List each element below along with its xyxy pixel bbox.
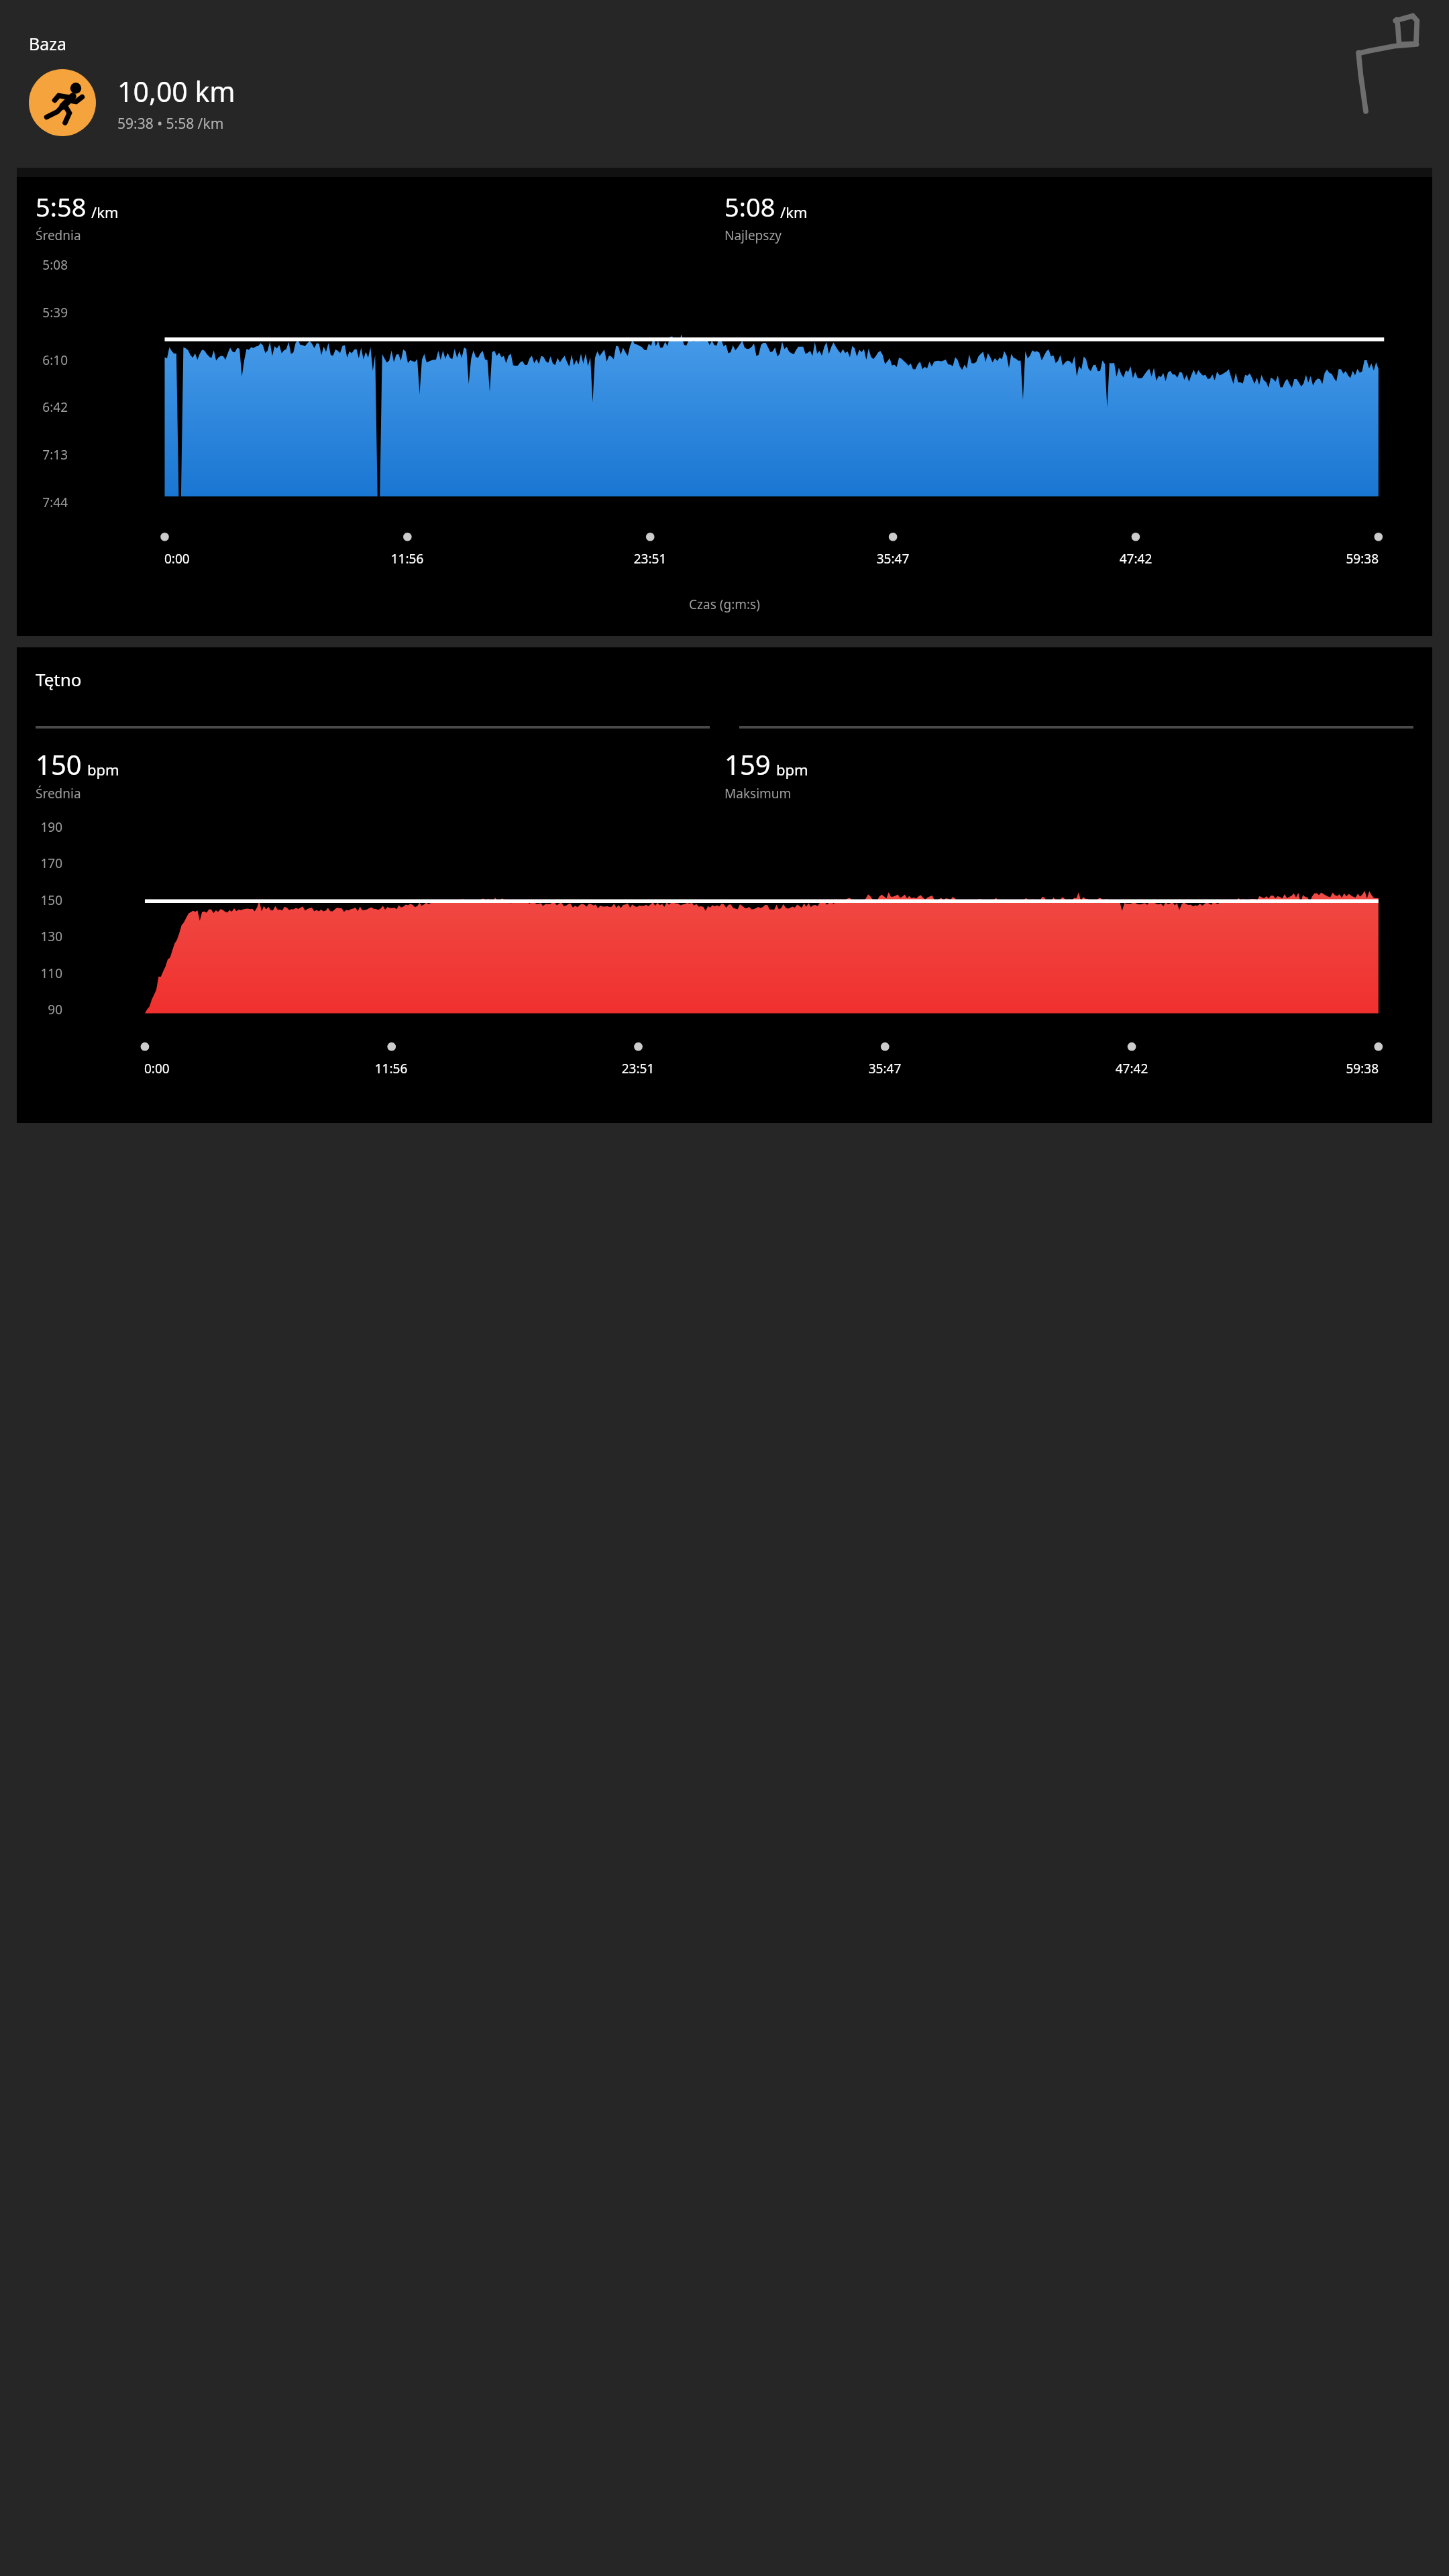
staticText: 159 <box>724 746 771 782</box>
staticText: 0:00 <box>164 550 286 568</box>
staticText: 130 <box>26 928 62 945</box>
staticText: 150 <box>26 892 62 909</box>
staticText: 59:38 • 5:58 /km <box>117 114 224 133</box>
staticText: 190 <box>26 818 62 836</box>
staticText: 110 <box>26 965 62 982</box>
staticText: Średnia <box>36 227 81 244</box>
staticText: 6:42 <box>26 398 68 416</box>
staticText: /km <box>780 202 808 222</box>
staticText: 59:38 <box>1257 550 1379 568</box>
staticText: /km <box>91 202 119 222</box>
staticText: Maksimum <box>724 785 792 802</box>
staticText: Tętno <box>36 667 82 691</box>
staticText: 6:10 <box>26 352 68 369</box>
staticText: bpm <box>87 759 119 780</box>
staticText: 47:42 <box>1008 1060 1255 1077</box>
staticText: 0:00 <box>144 1060 268 1077</box>
staticText: 11:56 <box>286 550 529 568</box>
button[interactable]: 5:58 <box>17 168 1432 636</box>
button[interactable]: Running activity <box>29 69 96 136</box>
staticText: 5:08 <box>724 189 775 224</box>
staticText: 5:08 <box>26 256 68 274</box>
staticText: 90 <box>26 1001 62 1018</box>
staticText: 5:39 <box>26 304 68 321</box>
staticText: 7:13 <box>26 446 68 464</box>
button[interactable]: Finish flag <box>1338 8 1432 129</box>
staticText: 23:51 <box>529 550 771 568</box>
staticText: 7:44 <box>26 494 68 511</box>
staticText: Baza <box>29 32 67 55</box>
staticText: 10,00 km <box>117 72 235 110</box>
staticText: Średnia <box>36 785 81 802</box>
staticText: 23:51 <box>515 1060 761 1077</box>
staticText: Czas (g:m:s) <box>17 596 1432 613</box>
staticText: 170 <box>26 855 62 872</box>
staticText: 35:47 <box>761 1060 1008 1077</box>
staticText: bpm <box>776 759 808 780</box>
staticText: 47:42 <box>1014 550 1257 568</box>
staticText: 11:56 <box>268 1060 515 1077</box>
staticText: 59:38 <box>1255 1060 1379 1077</box>
staticText: 5:58 <box>36 189 87 224</box>
staticText: 150 <box>36 746 82 782</box>
staticText: 35:47 <box>771 550 1014 568</box>
staticText: Najlepszy <box>724 227 782 244</box>
button[interactable]: Tętno <box>17 647 1432 1123</box>
